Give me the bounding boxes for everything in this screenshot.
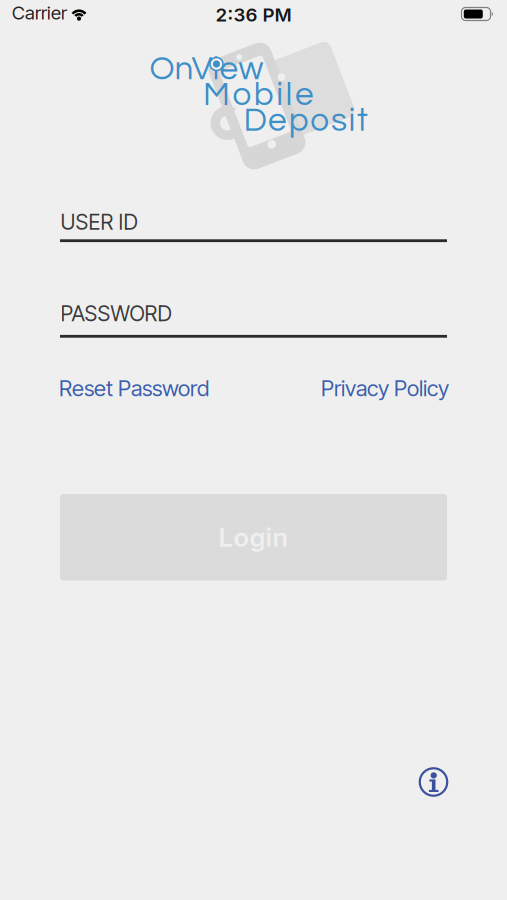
staticText: e (295, 78, 314, 112)
button[interactable]: Password (60, 300, 447, 338)
staticText: OnView (149, 52, 263, 86)
button[interactable]: Reset Password (59, 375, 209, 402)
staticText: USER ID (60, 209, 137, 235)
button[interactable]: Privacy Policy (321, 375, 449, 402)
staticText: 2:36 PM (215, 3, 291, 26)
staticText: b (254, 78, 274, 112)
staticText: Privacy Policy (321, 375, 449, 402)
button[interactable]: User ID (60, 209, 447, 242)
staticText: Reset Password (59, 375, 209, 402)
staticText: o (232, 78, 251, 112)
staticText: l (286, 78, 293, 112)
staticText: M (203, 78, 230, 112)
staticText: t (357, 103, 368, 138)
staticText: D (243, 103, 266, 138)
staticText: e (268, 103, 287, 138)
staticText: i (348, 103, 355, 138)
staticText: p (289, 103, 309, 138)
staticText: i (276, 78, 283, 112)
staticText: o (310, 103, 329, 138)
staticText: Carrier (12, 1, 67, 24)
staticText: PASSWORD (60, 300, 171, 326)
staticText: Login (218, 521, 288, 553)
button[interactable]: Information (415, 764, 451, 800)
staticText: s (331, 103, 347, 138)
